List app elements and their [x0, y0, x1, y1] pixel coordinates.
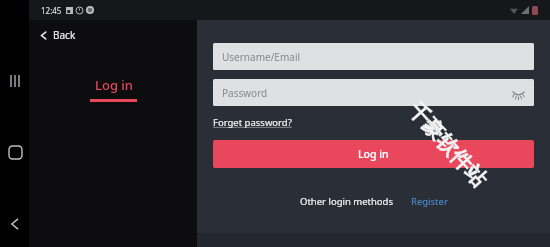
button[interactable]: Back: [29, 20, 197, 50]
staticText: Log in: [95, 76, 133, 94]
button[interactable]: Show password: [511, 86, 525, 100]
staticText: Password: [222, 86, 268, 100]
button[interactable]: Other login methods: [298, 193, 395, 210]
staticText: Forget password?: [213, 116, 292, 129]
staticText: Username/Email: [222, 50, 301, 64]
staticText: Other login methods: [300, 195, 393, 208]
button[interactable]: Password: [213, 79, 534, 106]
staticText: 12:45: [41, 5, 62, 16]
button[interactable]: Log in: [80, 72, 147, 106]
button[interactable]: Home: [1, 138, 29, 166]
button[interactable]: Register: [409, 193, 450, 210]
staticText: 千豪软件站: [403, 97, 492, 193]
staticText: Log in: [358, 147, 389, 161]
button[interactable]: Back: [1, 210, 29, 238]
button[interactable]: Log in: [213, 140, 534, 168]
button[interactable]: Username/Email: [213, 43, 534, 70]
staticText: Back: [53, 28, 76, 42]
staticText: Register: [411, 195, 448, 208]
button[interactable]: Recent apps: [2, 68, 28, 94]
button[interactable]: Forget password?: [213, 116, 292, 129]
